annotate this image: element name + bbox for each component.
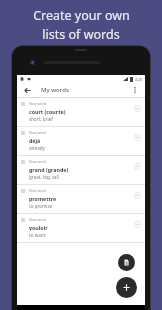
staticText: My words <box>41 86 69 94</box>
staticText: New word <box>29 159 47 164</box>
staticText: New word <box>29 217 47 222</box>
staticText: already <box>29 145 45 151</box>
button[interactable]: Play pronunciation <box>133 191 142 200</box>
staticText: short, brief <box>29 116 53 122</box>
staticText: Create your own <box>33 7 130 24</box>
staticText: promettre <box>29 195 57 202</box>
button[interactable]: New word <box>17 185 145 213</box>
staticText: déjà <box>29 137 41 144</box>
staticText: 4:20 <box>135 77 142 82</box>
button[interactable]: New word <box>17 127 145 155</box>
staticText: New word <box>29 188 47 193</box>
button[interactable]: Import word list <box>118 254 135 271</box>
staticText: lists of words <box>42 26 120 43</box>
button[interactable]: New word <box>17 214 145 242</box>
button[interactable]: More options <box>129 84 141 96</box>
button[interactable]: Back <box>21 84 33 96</box>
staticText: court (courte) <box>29 108 66 115</box>
staticText: vouloir <box>29 224 48 231</box>
button[interactable]: New word <box>17 156 145 184</box>
button[interactable]: Play pronunciation <box>133 162 142 171</box>
button[interactable]: Play pronunciation <box>133 133 142 142</box>
staticText: great, big, tall <box>29 174 59 180</box>
button[interactable]: New word <box>17 98 145 126</box>
button[interactable]: Add word <box>116 277 137 298</box>
staticText: New word <box>29 130 47 135</box>
staticText: to want <box>29 232 46 238</box>
staticText: to promise <box>29 203 53 209</box>
button[interactable]: Play pronunciation <box>133 220 142 229</box>
button[interactable]: Play pronunciation <box>133 104 142 113</box>
staticText: New word <box>29 101 47 106</box>
staticText: grand (grande) <box>29 166 69 173</box>
